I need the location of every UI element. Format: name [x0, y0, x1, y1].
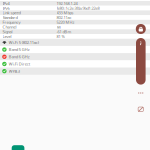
staticText: Wi-Fi 5 (802.11ac) — [9, 40, 39, 45]
staticText: Link speed — [2, 10, 20, 15]
staticText: Signal — [2, 29, 12, 34]
staticText: WPA3 — [9, 68, 20, 74]
staticText: Channel — [2, 24, 16, 30]
staticText: fe80::1c2e:3f4a:9bd1:22e8 — [56, 5, 99, 11]
staticText: Band 5 GHz — [9, 47, 30, 52]
staticText: Level — [2, 34, 11, 39]
staticText: 5220 MHz — [56, 20, 74, 25]
button[interactable]: Disable — [138, 106, 143, 112]
staticText: Wi-Fi Direct — [9, 61, 30, 67]
staticText: -61 dBm — [56, 29, 71, 34]
staticText: IPv6 — [2, 5, 9, 11]
staticText: Frequency — [2, 20, 20, 25]
staticText: Standard — [2, 15, 17, 20]
button[interactable]: Connect — [12, 145, 24, 150]
staticText: IPv4 — [2, 1, 9, 6]
button[interactable]: More options — [138, 90, 143, 95]
staticText: 433 Mbps — [56, 10, 73, 15]
staticText: 44 — [56, 24, 60, 30]
button[interactable]: Info — [136, 38, 146, 85]
staticText: 802.11ac — [56, 15, 71, 20]
button[interactable]: Home — [136, 24, 146, 34]
staticText: Band 6 GHz — [9, 54, 30, 59]
staticText: 192.168.1.24 — [56, 1, 77, 6]
staticText: 81 % — [56, 34, 64, 39]
